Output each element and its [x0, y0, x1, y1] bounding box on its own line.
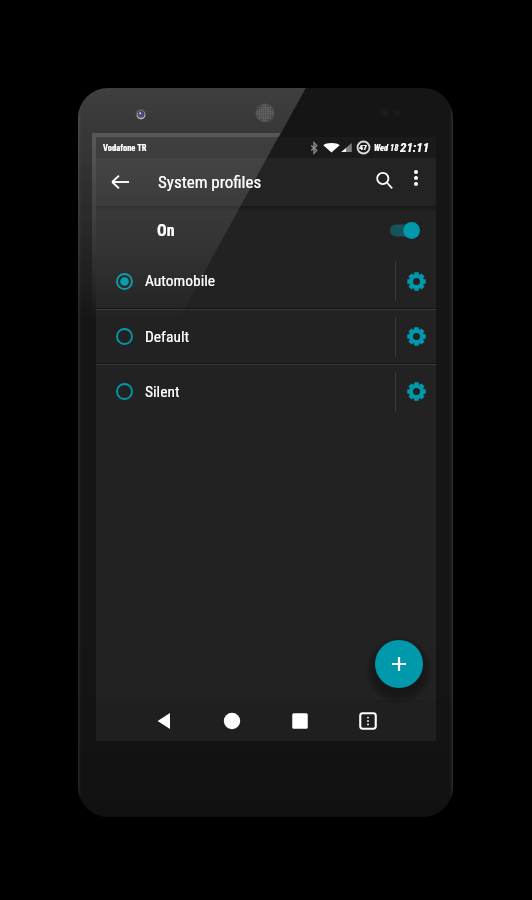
button[interactable]: On: [96, 206, 436, 254]
staticText: Wed 18: [374, 143, 399, 153]
staticText: Silent: [145, 383, 180, 401]
button[interactable]: More options: [396, 158, 436, 198]
button[interactable]: Default: [96, 310, 395, 363]
staticText: System profiles: [158, 172, 262, 192]
button[interactable]: Back: [142, 700, 186, 741]
button[interactable]: Profile settings: [396, 365, 436, 418]
button[interactable]: Search: [362, 158, 406, 202]
button[interactable]: Menu: [346, 700, 390, 741]
button[interactable]: Automobile: [96, 254, 395, 308]
staticText: 47: [359, 143, 368, 152]
staticText: Vodafone TR: [103, 143, 147, 153]
staticText: On: [157, 221, 175, 240]
button[interactable]: Back: [96, 158, 144, 206]
button[interactable]: Add profile: [375, 640, 423, 688]
button[interactable]: Profile settings: [396, 310, 436, 363]
staticText: 21:11: [400, 140, 430, 155]
button[interactable]: Profile settings: [396, 254, 436, 308]
button[interactable]: Silent: [96, 365, 395, 418]
staticText: Automobile: [145, 272, 216, 290]
button[interactable]: Home: [210, 700, 254, 741]
staticText: Default: [145, 328, 190, 346]
button[interactable]: Recents: [278, 700, 322, 741]
